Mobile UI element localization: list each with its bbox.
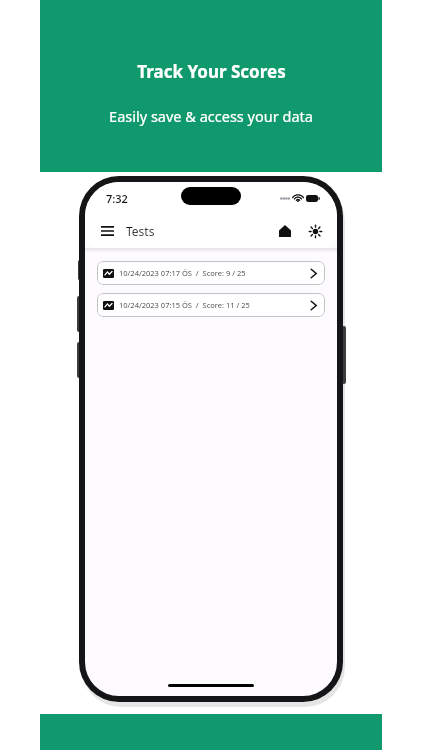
- button[interactable]: 10/24/2023 07:15 ÖS / Score: 11 / 25: [97, 293, 325, 317]
- staticText: Easily save & access your data: [109, 106, 313, 126]
- staticText: Tests: [126, 223, 155, 239]
- staticText: 7:32: [106, 191, 128, 206]
- button[interactable]: 10/24/2023 07:17 ÖS / Score: 9 / 25: [97, 261, 325, 285]
- button[interactable]: Menu: [95, 219, 119, 243]
- staticText: Track Your Scores: [137, 60, 286, 83]
- staticText: 10/24/2023 07:17 ÖS / Score: 9 / 25: [119, 268, 246, 278]
- button[interactable]: Home: [273, 219, 297, 243]
- staticText: 10/24/2023 07:15 ÖS / Score: 11 / 25: [119, 300, 250, 310]
- button[interactable]: Toggle brightness: [303, 219, 327, 243]
